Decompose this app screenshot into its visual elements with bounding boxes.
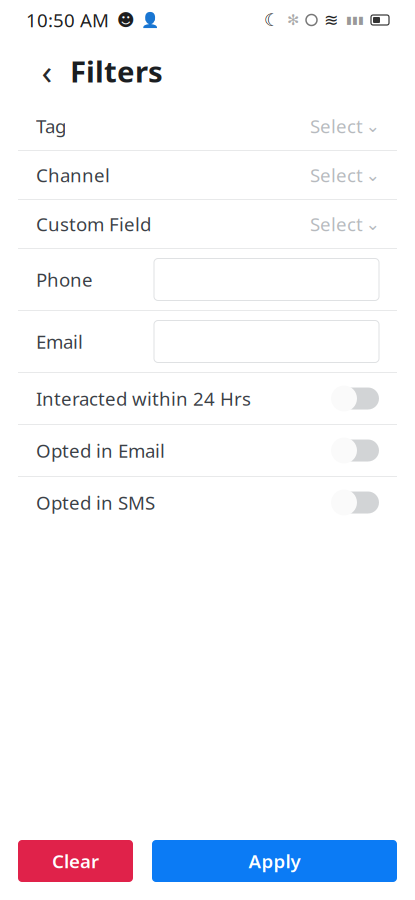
staticText: Custom Field [36,212,151,236]
staticText: ☻ [117,10,135,30]
staticText: Phone [36,267,93,292]
button[interactable]: Custom Field [18,200,397,248]
staticText: 10:50 AM [26,8,109,32]
staticText: ⌄ [365,116,380,136]
staticText: ≋ [324,10,339,30]
staticText: ☾ [264,10,280,30]
staticText: Select [310,163,363,187]
staticText: Clear [52,849,99,873]
button[interactable]: Channel [18,151,397,199]
button[interactable]: Opted in SMS [18,477,397,528]
staticText: Channel [36,163,110,187]
staticText: ✻ [287,12,299,28]
staticText: Select [310,212,363,236]
button[interactable]: Interacted within 24 Hrs [18,373,397,424]
staticText: ▮▮▮ [346,14,364,26]
button[interactable]: Phone field [154,258,379,300]
staticText: Filters [70,51,163,90]
staticText: Opted in SMS [36,490,155,515]
staticText: ‹ [41,48,52,94]
button[interactable]: Apply [152,840,397,882]
button[interactable]: Email field [154,320,379,362]
button[interactable]: Opted in Email [18,425,397,476]
staticText: Opted in Email [36,438,165,463]
staticText: Email [36,329,83,354]
button[interactable]: Back [38,54,56,88]
staticText: Tag [36,114,66,138]
button[interactable]: Clear [18,840,133,882]
staticText: 👤 [141,12,159,28]
staticText: Apply [248,849,300,873]
staticText: ⌄ [365,165,380,185]
button[interactable]: Tag [18,102,397,150]
staticText: Select [310,114,363,138]
staticText: Interacted within 24 Hrs [36,386,251,411]
staticText: ⌄ [365,214,380,234]
